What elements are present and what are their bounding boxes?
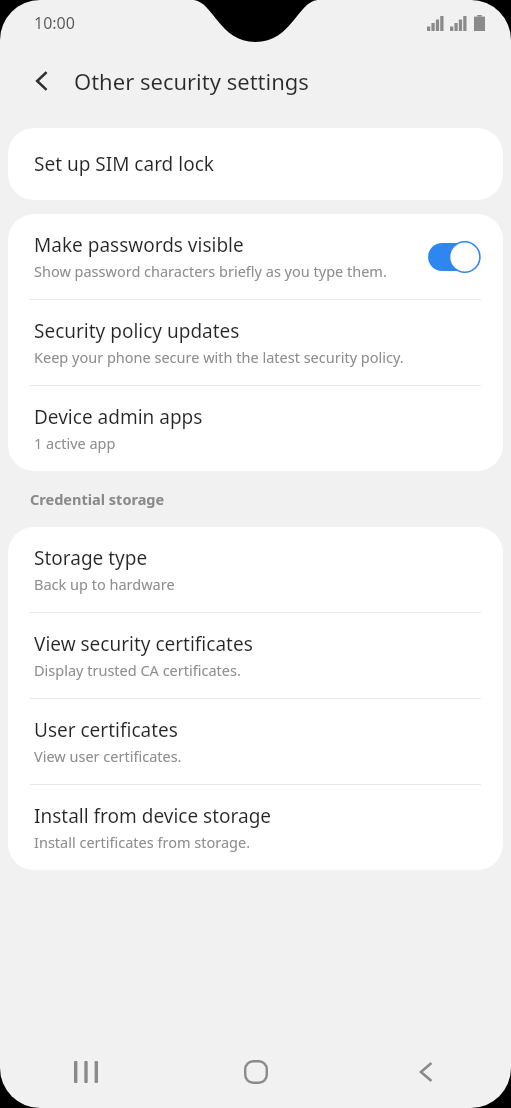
button[interactable]: User certificates xyxy=(8,699,503,784)
staticText: Device admin apps xyxy=(34,404,203,430)
staticText: Set up SIM card lock xyxy=(34,151,214,177)
staticText: View user certificates. xyxy=(34,746,182,766)
staticText: Keep your phone secure with the latest s… xyxy=(34,347,404,367)
staticText: Show password characters briefly as you … xyxy=(34,261,387,281)
staticText: Install certificates from storage. xyxy=(34,832,251,852)
staticText: Security policy updates xyxy=(34,318,240,344)
staticText: Credential storage xyxy=(30,489,165,509)
button[interactable]: Storage type xyxy=(8,527,503,612)
button[interactable]: View security certificates xyxy=(8,613,503,698)
button[interactable]: Make passwords visible xyxy=(8,214,503,299)
staticText: Storage type xyxy=(34,545,148,571)
staticText: Make passwords visible xyxy=(34,232,244,258)
button[interactable]: Back xyxy=(341,1036,511,1108)
button[interactable]: Install from device storage xyxy=(8,785,503,870)
button[interactable]: Back xyxy=(18,57,66,105)
button[interactable]: Make passwords visible toggle xyxy=(427,241,481,273)
button[interactable]: Set up SIM card lock xyxy=(8,128,503,200)
staticText: 10:00 xyxy=(34,12,75,34)
staticText: Back up to hardware xyxy=(34,574,175,594)
staticText: User certificates xyxy=(34,717,178,743)
staticText: View security certificates xyxy=(34,631,253,657)
staticText: Install from device storage xyxy=(34,803,272,829)
button[interactable]: Security policy updates xyxy=(8,300,503,385)
staticText: Other security settings xyxy=(74,66,309,96)
button[interactable]: Home xyxy=(171,1036,341,1108)
staticText: 1 active app xyxy=(34,433,116,453)
staticText: Display trusted CA certificates. xyxy=(34,660,241,680)
button[interactable]: Device admin apps xyxy=(8,386,503,471)
button[interactable]: Recents xyxy=(0,1036,171,1108)
